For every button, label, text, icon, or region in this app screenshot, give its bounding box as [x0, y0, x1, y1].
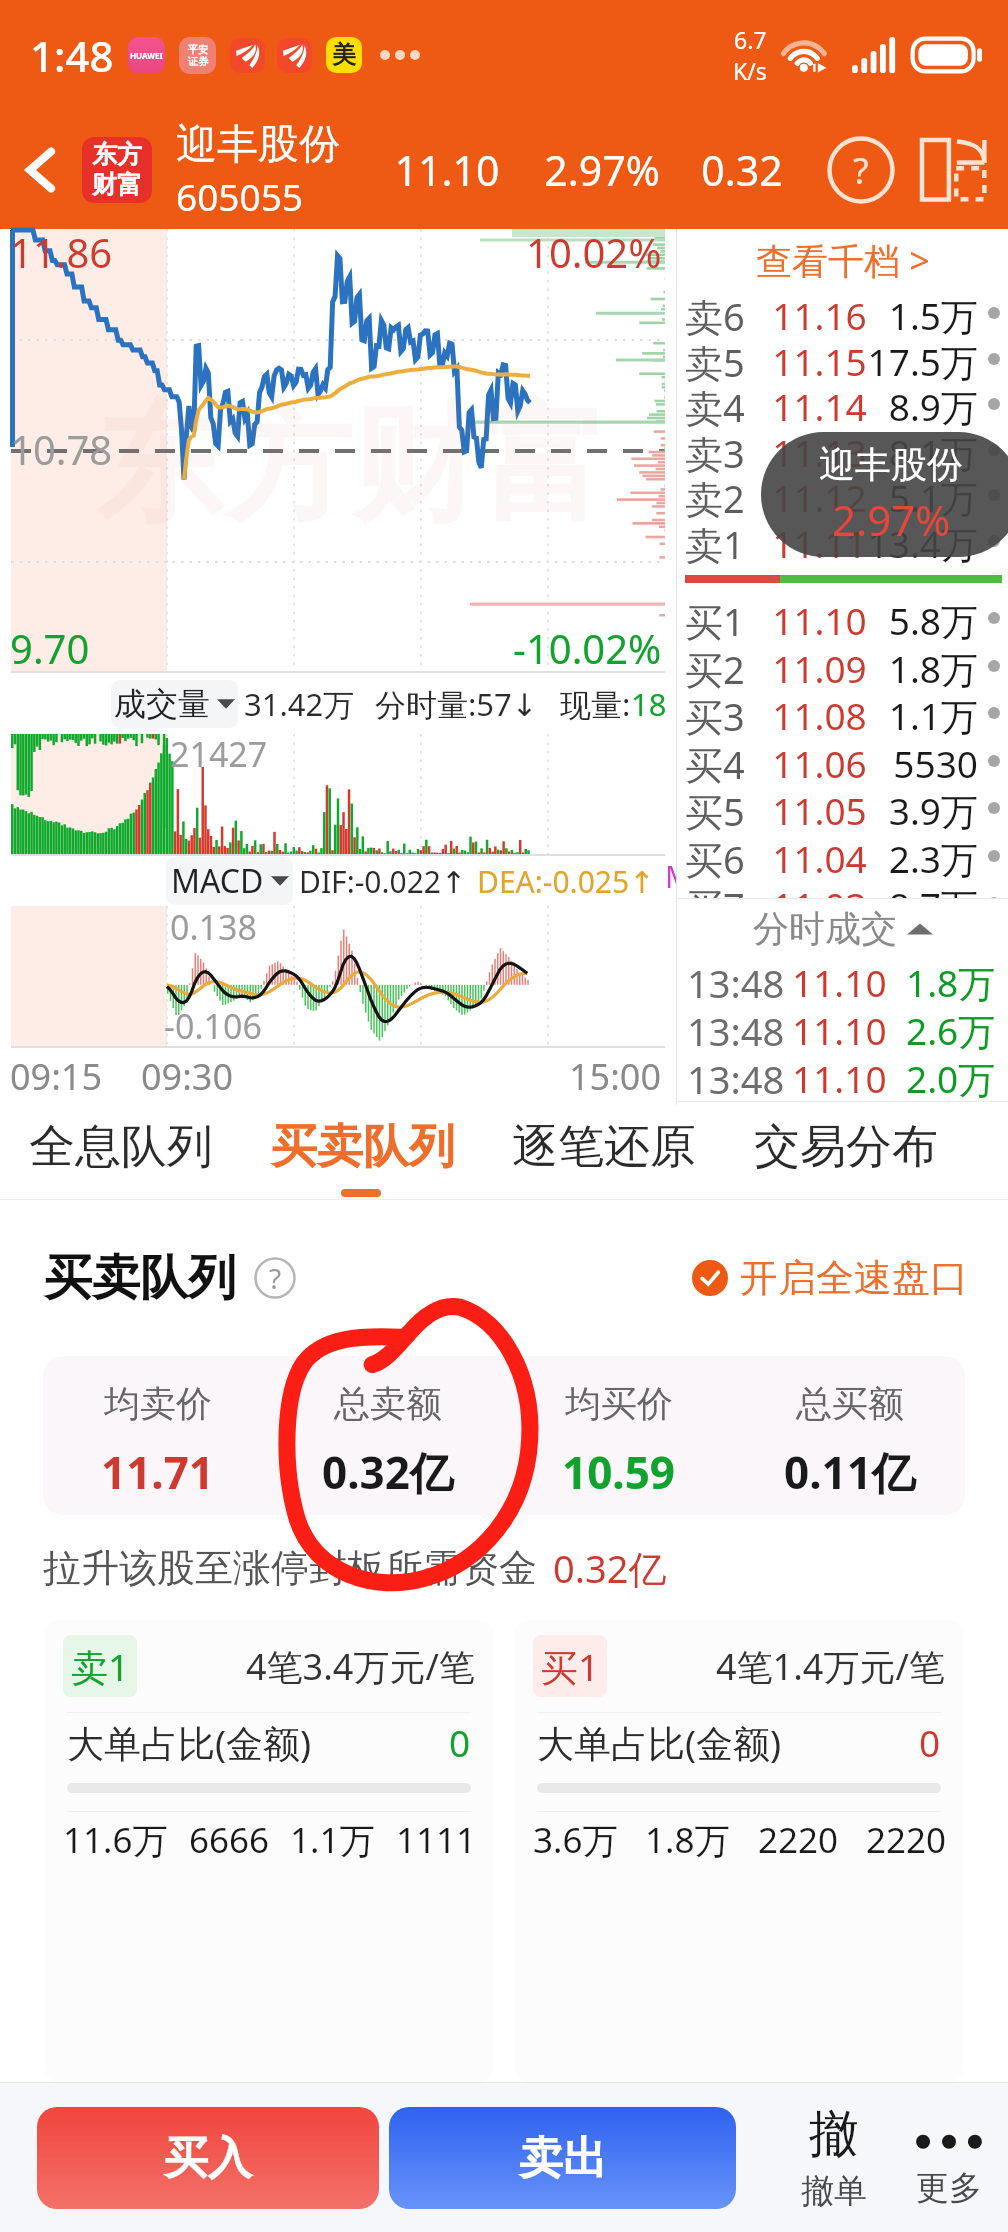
staticText: 开启全速盘口 [740, 1254, 968, 1302]
button[interactable]: 查看千档 > [677, 229, 1008, 291]
staticText: 0.32 [682, 142, 802, 198]
staticText: 卖4 [685, 381, 745, 427]
button[interactable]: 分时成交 [677, 899, 1008, 957]
staticText: 大单占比(金额) [67, 1717, 312, 1768]
button[interactable]: 13:48 [677, 1053, 1008, 1101]
staticText: 09:30 [141, 1052, 234, 1101]
staticText: 买入 [164, 2131, 252, 2186]
staticText: 买4 [685, 738, 745, 784]
staticText: 10.78 [10, 422, 113, 476]
button[interactable]: 撤 [778, 2103, 890, 2212]
button[interactable]: 卖1 [45, 1620, 493, 2082]
staticText: 2.97% [522, 142, 682, 198]
staticText: 21427 [170, 731, 268, 777]
staticText: 11.10 [792, 957, 887, 1005]
button[interactable]: 13:48 [677, 1005, 1008, 1053]
staticText: 买7 [685, 880, 745, 926]
staticText: 10.02% [526, 225, 662, 279]
staticText: 11.14 [772, 381, 867, 427]
button[interactable]: 逐笔还原 [494, 1105, 714, 1200]
button[interactable]: 买1 [677, 595, 1008, 641]
button[interactable]: 买7 [677, 880, 1008, 926]
button[interactable]: Info [254, 1257, 296, 1299]
staticText: 15:00 [569, 1052, 662, 1101]
button[interactable]: Help [818, 127, 904, 213]
button[interactable]: 卖4 [677, 381, 1008, 427]
staticText: 11.10 [772, 595, 867, 641]
button[interactable]: 买3 [677, 690, 1008, 736]
staticText: 撤单 [801, 2170, 867, 2212]
button[interactable]: 卖1 [677, 518, 1008, 564]
button[interactable]: 开启全速盘口 [692, 1254, 968, 1302]
button[interactable]: 买5 [677, 785, 1008, 831]
staticText: 8.7万 [888, 880, 978, 926]
button[interactable]: 东方 财富 [82, 137, 152, 203]
staticText: 1.5万 [888, 290, 978, 336]
staticText: 4笔1.4万元/笔 [716, 1642, 945, 1691]
button[interactable]: 卖3 [677, 427, 1008, 473]
staticText: 买1 [685, 595, 745, 641]
button[interactable]: Switch layout [910, 127, 996, 213]
staticText: 5.1万 [888, 472, 978, 518]
staticText: 东方 财富 [92, 139, 142, 201]
button[interactable]: 买2 [677, 643, 1008, 689]
button[interactable]: MACD [166, 857, 293, 905]
staticText: 均卖价 [104, 1381, 212, 1426]
staticText: 8.9万 [888, 381, 978, 427]
button[interactable]: 卖2 [677, 472, 1008, 518]
staticText: 迎丰股份 [819, 442, 963, 487]
button[interactable]: 全息队列 [11, 1105, 231, 1200]
button[interactable]: 买1 [515, 1620, 963, 2082]
button[interactable]: 买6 [677, 833, 1008, 879]
button[interactable]: 卖出 [389, 2107, 736, 2209]
staticText: 买5 [685, 785, 745, 831]
button[interactable]: 卖5 [677, 336, 1008, 382]
staticText: -0.106 [164, 1003, 262, 1049]
staticText: 总买额 [796, 1381, 904, 1426]
staticText: 分时成交 [753, 906, 897, 951]
staticText: 买6 [685, 833, 745, 879]
staticText: 现量: [560, 683, 631, 725]
staticText: 2.0万 [906, 1053, 996, 1101]
staticText: ? [853, 146, 869, 195]
staticText: 0 [449, 1717, 471, 1767]
staticText: 迎丰股份 [176, 119, 340, 171]
staticText: 逐笔还原 [512, 1118, 696, 1176]
staticText: 1111 [396, 1816, 477, 1864]
staticText: 13:48 [687, 1053, 785, 1101]
staticText: 买3 [685, 690, 745, 736]
staticText: 撤 [809, 2103, 859, 2166]
button[interactable]: 总卖额 [273, 1356, 503, 1515]
button[interactable]: 买4 [677, 738, 1008, 784]
staticText: 5.8万 [888, 595, 978, 641]
button[interactable]: 交易分布 [736, 1105, 956, 1200]
staticText: 13:48 [687, 1005, 785, 1053]
staticText: 卖1 [71, 1641, 130, 1692]
button[interactable]: 均买价 [503, 1356, 734, 1515]
staticText: 6.7 [734, 24, 767, 55]
staticText: 卖1 [685, 518, 745, 564]
button[interactable]: Back [0, 110, 82, 229]
button[interactable]: 买入 [37, 2107, 379, 2209]
staticText: 总卖额 [334, 1381, 442, 1426]
staticText: 1.1万 [290, 1816, 375, 1864]
staticText: 10.59 [562, 1442, 676, 1502]
staticText: 平安 证券 [188, 43, 208, 68]
button[interactable]: 成交量 [111, 680, 238, 728]
staticText: 1.8万 [906, 957, 996, 1005]
button[interactable]: 更多 [890, 2107, 1008, 2209]
staticText: 分时量:57↓ [375, 683, 538, 725]
staticText: 成交量 [114, 684, 210, 724]
button[interactable]: 13:48 [677, 957, 1008, 1005]
button[interactable]: 卖6 [677, 290, 1008, 336]
button[interactable]: 均卖价 [43, 1356, 273, 1515]
staticText: 0 [919, 1717, 941, 1767]
staticText: 11.09 [772, 643, 867, 689]
staticText: 1.8万 [888, 643, 978, 689]
staticText: M:0.006↑ [665, 856, 676, 906]
button[interactable]: 买卖队列 [253, 1105, 473, 1200]
staticText: 11.10 [792, 1053, 887, 1101]
staticText: 17.5万 [867, 336, 978, 382]
button[interactable]: 总买额 [734, 1356, 965, 1515]
staticText: 11.11 [772, 518, 867, 564]
